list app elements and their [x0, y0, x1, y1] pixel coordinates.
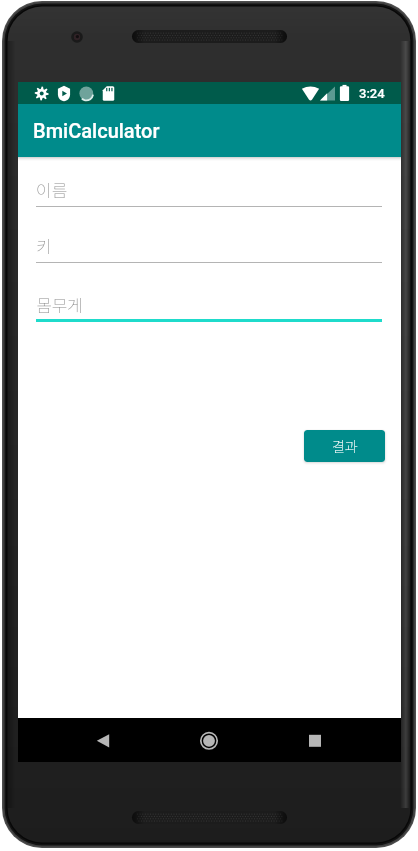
button[interactable]: 키	[36, 227, 382, 263]
staticText: 이름	[36, 177, 68, 202]
staticText: 몸무게	[36, 292, 83, 317]
button[interactable]: 몸무게	[36, 286, 382, 322]
button[interactable]: 결과	[304, 430, 385, 462]
staticText: BmiCalculator	[33, 119, 160, 142]
staticText: 결과	[332, 436, 358, 456]
button[interactable]: Back	[79, 718, 127, 762]
button[interactable]: 이름	[36, 171, 382, 207]
button[interactable]: Home	[185, 718, 233, 762]
button[interactable]: Recents	[291, 718, 339, 762]
staticText: 3:24	[359, 86, 385, 101]
staticText: 키	[36, 233, 52, 258]
